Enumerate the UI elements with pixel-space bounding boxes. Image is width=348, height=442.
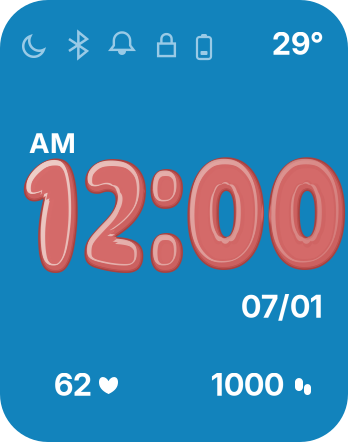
staticText: 07/01 [241,288,323,325]
staticText: 1000 [211,366,284,403]
staticText: 12:00 [21,111,345,306]
staticText: 12:00 [23,114,347,309]
staticText: 29° [272,25,324,62]
staticText: 12:00 [23,114,347,309]
staticText: 12:00 [23,114,347,309]
staticText: 62 [54,366,92,403]
staticText: AM [29,126,76,160]
staticText: 12:00 [22,113,346,308]
staticText: 12:00 [23,114,347,309]
